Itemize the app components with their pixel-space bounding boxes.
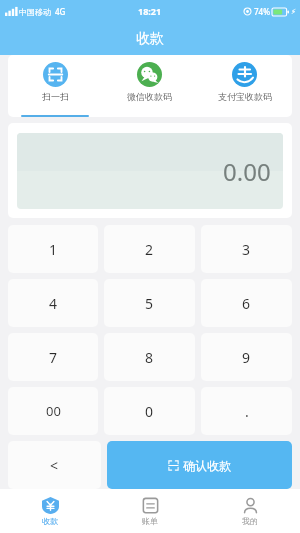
staticText: 确认收款 xyxy=(183,458,231,473)
staticText: 扫一扫 xyxy=(42,91,69,102)
staticText: 账单 xyxy=(142,516,158,526)
button[interactable]: 8 xyxy=(104,333,195,381)
staticText: 00 xyxy=(46,402,61,420)
staticText: 4 xyxy=(49,294,58,313)
button[interactable]: 微信收款码 xyxy=(102,55,197,117)
button[interactable]: 账单 xyxy=(100,489,200,533)
button[interactable]: Backspace xyxy=(8,441,101,489)
button[interactable]: 扫一扫 xyxy=(8,55,102,117)
staticText: 8 xyxy=(145,348,154,367)
button[interactable]: 0.00 xyxy=(17,133,283,209)
button[interactable]: 6 xyxy=(201,279,292,327)
staticText: 6 xyxy=(242,294,251,313)
staticText: 5 xyxy=(145,294,154,313)
staticText: 9 xyxy=(242,348,251,367)
button[interactable]: 5 xyxy=(104,279,195,327)
staticText: 我的 xyxy=(242,516,258,526)
staticText: 74% xyxy=(254,6,270,17)
staticText: 0.00 xyxy=(223,155,271,188)
button[interactable]: 00 xyxy=(8,387,98,435)
staticText: < xyxy=(50,456,59,475)
button[interactable]: 3 xyxy=(201,225,292,273)
button[interactable]: 4 xyxy=(8,279,98,327)
staticText: 支付宝收款码 xyxy=(218,91,272,102)
button[interactable]: 0 xyxy=(104,387,195,435)
staticText: 3 xyxy=(242,240,251,259)
button[interactable]: 7 xyxy=(8,333,98,381)
button[interactable]: 1 xyxy=(8,225,98,273)
button[interactable]: 确认收款 xyxy=(107,441,292,489)
staticText: 收款 xyxy=(42,516,58,526)
button[interactable]: 9 xyxy=(201,333,292,381)
staticText: 2 xyxy=(145,240,154,259)
staticText: ⚡ xyxy=(291,8,296,16)
button[interactable]: 我的 xyxy=(200,489,300,533)
staticText: 0 xyxy=(145,402,154,421)
staticText: 微信收款码 xyxy=(127,91,172,102)
staticText: 7 xyxy=(49,348,58,367)
button[interactable]: . xyxy=(201,387,292,435)
button[interactable]: 支付宝收款码 xyxy=(197,55,292,117)
staticText: 收款 xyxy=(136,30,164,48)
staticText: . xyxy=(245,402,249,421)
button[interactable]: 收款 xyxy=(0,489,100,533)
button[interactable]: 2 xyxy=(104,225,195,273)
staticText: 4G xyxy=(55,6,66,17)
staticText: 中国移动 xyxy=(19,7,51,17)
staticText: 18:21 xyxy=(138,5,162,17)
staticText: 1 xyxy=(49,240,58,259)
